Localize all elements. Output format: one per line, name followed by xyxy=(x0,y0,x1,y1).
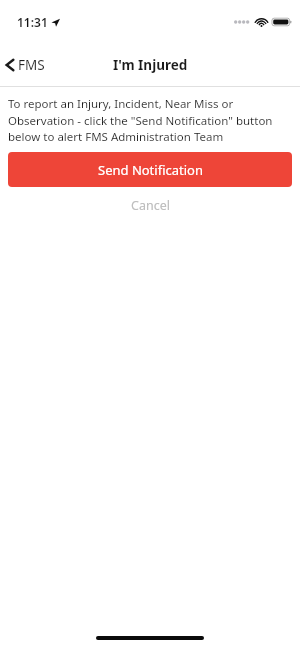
staticText: FMS xyxy=(18,56,45,74)
button[interactable]: Cancel xyxy=(0,187,300,224)
button[interactable]: Send Notification xyxy=(8,152,292,187)
staticText: Send Notification xyxy=(98,161,203,179)
staticText: 11:31 xyxy=(17,14,48,30)
staticText: I'm Injured xyxy=(113,56,188,74)
staticText: To report an Injury, Incident, Near Miss… xyxy=(8,96,294,144)
staticText: Cancel xyxy=(131,197,170,214)
button[interactable]: FMS xyxy=(0,52,53,78)
